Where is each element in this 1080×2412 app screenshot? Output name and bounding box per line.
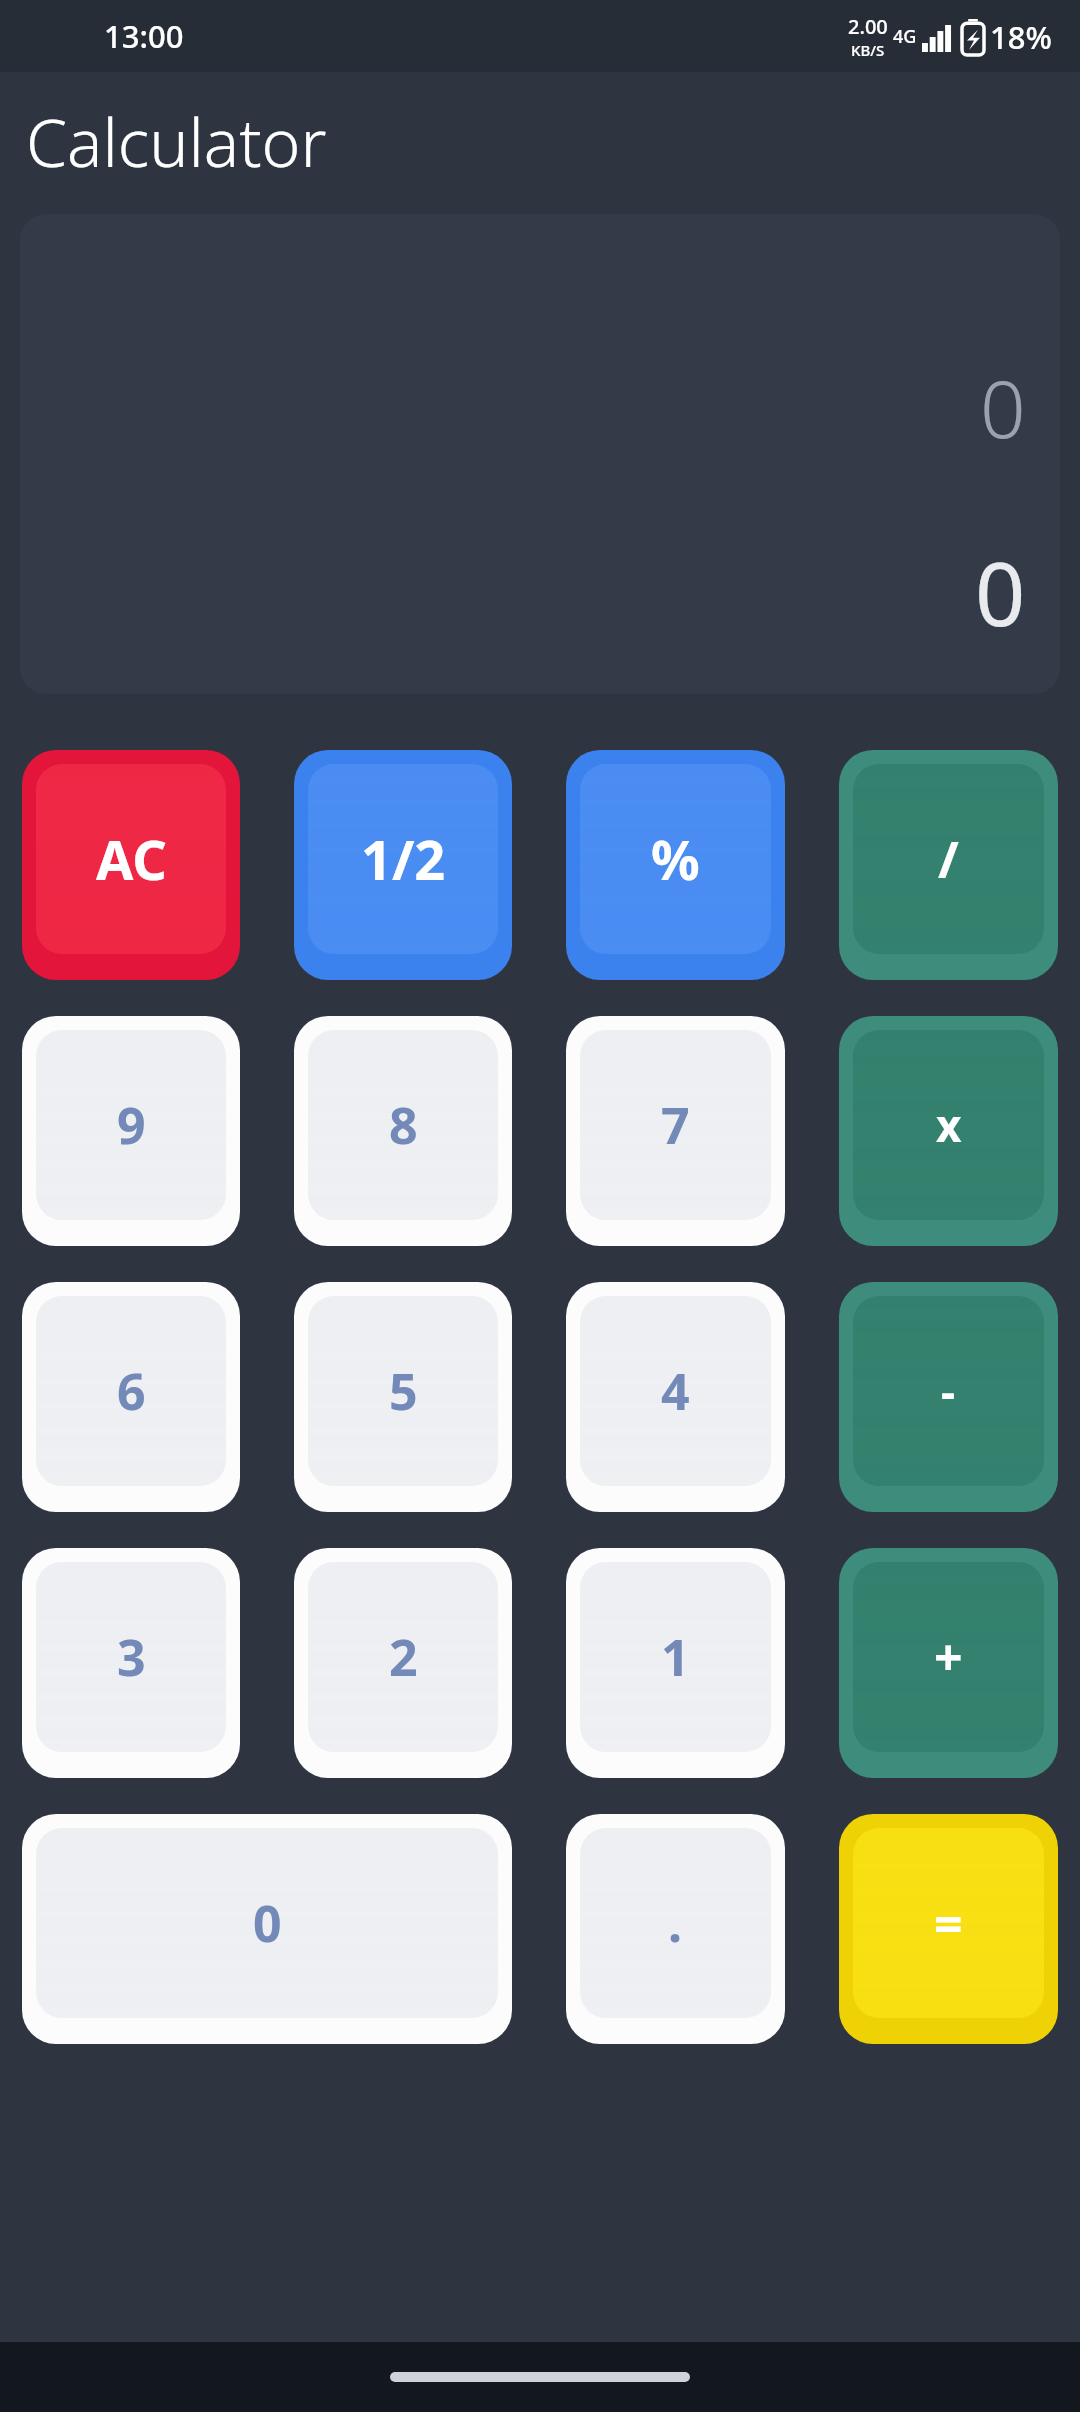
button[interactable]: = bbox=[839, 1814, 1058, 2044]
staticText: 0 bbox=[253, 1889, 282, 1957]
button[interactable]: - bbox=[839, 1282, 1058, 1512]
staticText: 4 bbox=[661, 1357, 690, 1425]
button[interactable]: 1/2 bbox=[294, 750, 512, 980]
staticText: Calculator bbox=[26, 96, 327, 186]
staticText: 5 bbox=[389, 1357, 418, 1425]
staticText: 0 bbox=[980, 352, 1026, 461]
staticText: - bbox=[941, 1361, 956, 1421]
staticText: = bbox=[934, 1889, 963, 1957]
staticText: 1 bbox=[661, 1623, 690, 1691]
staticText: + bbox=[934, 1623, 963, 1691]
staticText: 4G bbox=[893, 24, 917, 49]
button[interactable]: 9 bbox=[22, 1016, 240, 1246]
staticText: % bbox=[651, 822, 700, 896]
staticText: KB/S bbox=[851, 40, 885, 60]
button[interactable]: 1 bbox=[566, 1548, 785, 1778]
staticText: AC bbox=[96, 822, 167, 896]
button[interactable]: . bbox=[566, 1814, 785, 2044]
staticText: 6 bbox=[117, 1357, 146, 1425]
button[interactable]: 3 bbox=[22, 1548, 240, 1778]
button[interactable]: 4 bbox=[566, 1282, 785, 1512]
button[interactable]: 7 bbox=[566, 1016, 785, 1246]
staticText: x bbox=[936, 1095, 962, 1155]
staticText: 8 bbox=[389, 1091, 418, 1159]
staticText: / bbox=[938, 825, 959, 893]
staticText: 3 bbox=[117, 1623, 146, 1691]
button[interactable]: 5 bbox=[294, 1282, 512, 1512]
staticText: 2.00 bbox=[848, 13, 888, 40]
staticText: 18% bbox=[990, 16, 1052, 58]
button[interactable]: 0 bbox=[22, 1814, 512, 2044]
staticText: 1/2 bbox=[361, 822, 446, 896]
staticText: . bbox=[668, 1889, 683, 1957]
button[interactable]: / bbox=[839, 750, 1058, 980]
button[interactable]: + bbox=[839, 1548, 1058, 1778]
staticText: 2 bbox=[389, 1623, 418, 1691]
staticText: 0 bbox=[975, 532, 1026, 652]
button[interactable]: x bbox=[839, 1016, 1058, 1246]
button[interactable]: % bbox=[566, 750, 785, 980]
button[interactable]: 2 bbox=[294, 1548, 512, 1778]
button[interactable]: AC bbox=[22, 750, 240, 980]
button[interactable]: 8 bbox=[294, 1016, 512, 1246]
staticText: 13:00 bbox=[104, 15, 184, 57]
staticText: 7 bbox=[661, 1091, 690, 1159]
button[interactable]: 6 bbox=[22, 1282, 240, 1512]
staticText: 9 bbox=[117, 1091, 146, 1159]
